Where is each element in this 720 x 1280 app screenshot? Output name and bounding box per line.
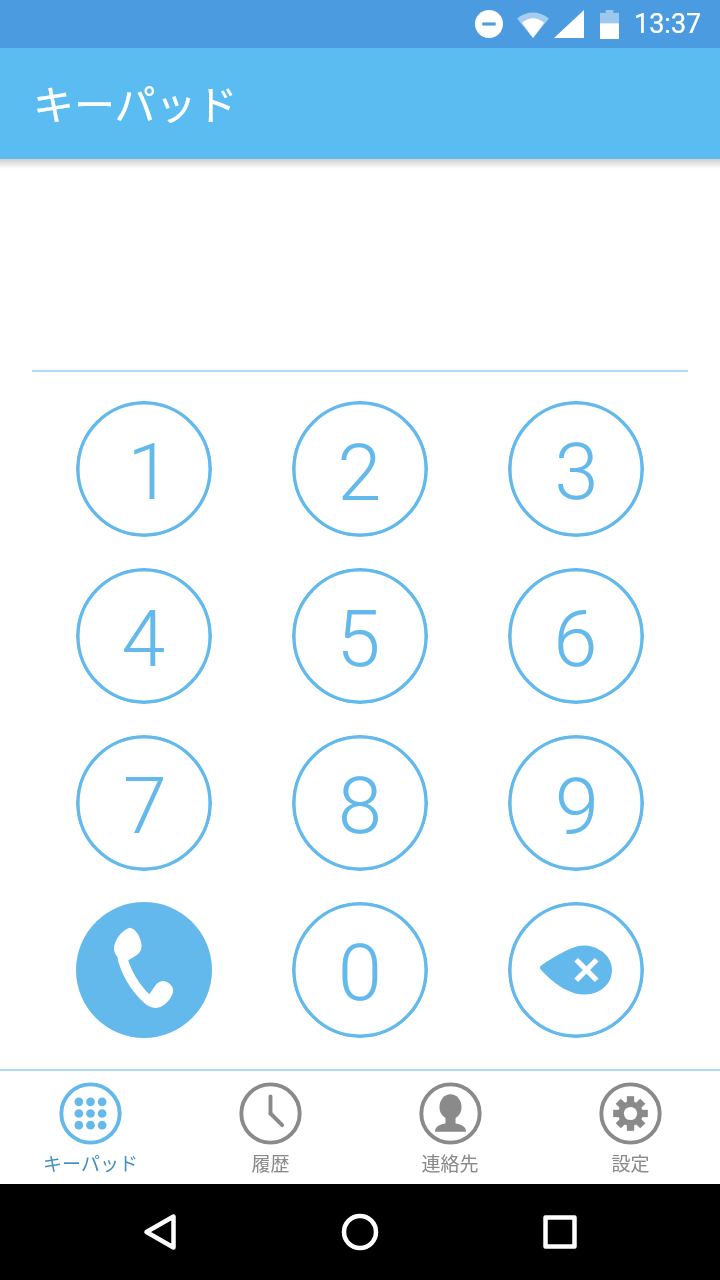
button[interactable]: 連絡先: [360, 1071, 540, 1184]
staticText: 履歴: [251, 1149, 290, 1177]
button[interactable]: [508, 735, 644, 871]
button[interactable]: 履歴: [180, 1071, 360, 1184]
staticText: キーパッド: [33, 72, 238, 131]
staticText: 13:37: [634, 8, 702, 40]
button[interactable]: [76, 735, 212, 871]
button[interactable]: [508, 568, 644, 704]
button[interactable]: [508, 401, 644, 537]
button[interactable]: キーパッド: [0, 1071, 180, 1184]
button[interactable]: [292, 902, 428, 1038]
staticText: 連絡先: [421, 1149, 479, 1177]
button[interactable]: [76, 568, 212, 704]
button[interactable]: 設定: [540, 1071, 720, 1184]
button[interactable]: [76, 401, 212, 537]
button[interactable]: Backspace: [508, 902, 644, 1038]
button[interactable]: [292, 568, 428, 704]
button[interactable]: Call: [76, 902, 212, 1038]
button[interactable]: [292, 735, 428, 871]
button[interactable]: [292, 401, 428, 537]
staticText: 設定: [611, 1149, 650, 1177]
staticText: キーパッド: [43, 1149, 138, 1177]
